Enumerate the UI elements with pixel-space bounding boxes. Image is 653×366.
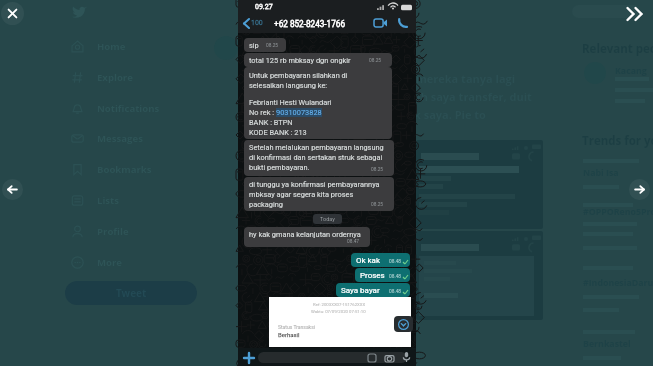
staticText: Febrianti Hesti Wulandari xyxy=(249,98,332,107)
staticText: Today xyxy=(320,216,335,222)
staticText: BANK : BTPN xyxy=(249,118,293,127)
button[interactable]: Previous xyxy=(2,179,23,200)
staticText: 09.27 xyxy=(255,3,273,11)
staticText: Profile xyxy=(97,225,129,238)
staticText: Lists xyxy=(97,194,120,207)
staticText: Messages xyxy=(97,132,143,145)
button[interactable] xyxy=(416,231,543,320)
staticText: 08.48 xyxy=(389,289,402,295)
staticText: 90310073828 xyxy=(276,108,322,117)
staticText: di tunggu ya konfirmasi pembayarannya mb… xyxy=(249,180,380,209)
staticText: Home xyxy=(97,40,126,53)
staticText: total 125 rb mbksay dgn ongkir xyxy=(249,56,351,65)
staticText: +62 852-8243-1766 xyxy=(274,19,346,29)
staticText: Proses xyxy=(360,271,385,280)
staticText: Relevant people xyxy=(582,41,653,57)
staticText: Tweet xyxy=(116,286,147,300)
staticText: k saya. Pie to xyxy=(414,107,486,122)
staticText: 100 xyxy=(251,19,263,27)
staticText: 08.25 xyxy=(371,202,384,208)
staticText: KODE BANK : 213 xyxy=(249,128,307,137)
staticText: Waktu: 07/09/2020 07:51:10 xyxy=(311,309,366,314)
staticText: mereka tanya lagi xyxy=(416,71,516,86)
button[interactable]: Scroll to bottom xyxy=(394,316,413,332)
staticText: Status Transaksi xyxy=(278,324,315,330)
staticText: Ok kak xyxy=(356,256,381,265)
staticText: More xyxy=(97,256,123,269)
staticText: 08.48 xyxy=(389,274,402,280)
staticText: #OPPOReno5Pro xyxy=(583,206,653,218)
staticText: Ref: 2003XX07-151762XXX xyxy=(313,302,366,307)
staticText: Trends for you xyxy=(582,133,653,149)
staticText: sip xyxy=(249,41,259,50)
staticText: Explore xyxy=(97,71,133,84)
staticText: Notifications xyxy=(97,102,160,115)
staticText: Setelah melalukan pembayaran langsung di… xyxy=(249,143,384,172)
staticText: No rek : xyxy=(249,108,276,117)
staticText: Berhasil xyxy=(278,331,300,338)
staticText: hy kak gmana kelanjutan ordernya xyxy=(249,230,361,239)
button[interactable]: Next xyxy=(629,179,650,200)
button[interactable]: Expand xyxy=(625,2,649,26)
staticText: Untuk pembayaran silahkan di selesaikan … xyxy=(249,71,348,90)
staticText: Saya bayar xyxy=(341,286,380,295)
staticText: 08.25 xyxy=(266,43,279,49)
staticText: ah saya transfer, duit xyxy=(414,89,532,104)
staticText: Bookmarks xyxy=(97,163,152,176)
staticText: 08.25 xyxy=(371,167,384,173)
button[interactable] xyxy=(416,140,543,229)
staticText: 08.25 xyxy=(369,58,382,64)
staticText: 08.48 xyxy=(389,259,402,265)
staticText: 08.47 xyxy=(347,239,360,245)
button[interactable]: Close xyxy=(1,2,24,25)
